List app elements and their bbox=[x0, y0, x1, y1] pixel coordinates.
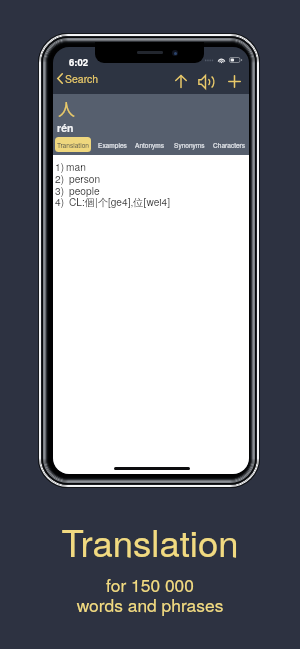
staticText: Antonyms bbox=[135, 140, 165, 149]
staticText: Translation bbox=[57, 140, 89, 149]
staticText: 3) bbox=[55, 183, 65, 198]
staticText: person bbox=[69, 171, 101, 186]
button[interactable]: Antonyms bbox=[133, 137, 167, 152]
button[interactable]: Translation bbox=[55, 137, 91, 152]
staticText: Search bbox=[65, 71, 99, 86]
staticText: people bbox=[69, 183, 100, 198]
staticText: 人 bbox=[58, 96, 75, 121]
staticText: 4) bbox=[55, 194, 65, 209]
button[interactable]: Pronounce bbox=[195, 70, 218, 93]
button[interactable]: Search bbox=[54, 68, 105, 89]
staticText: for 150 000 words and phrases bbox=[0, 572, 300, 617]
staticText: CL:個|个[ge4],位[wei4] bbox=[69, 194, 171, 209]
staticText: rén bbox=[57, 120, 74, 135]
button[interactable]: Examples bbox=[96, 137, 129, 152]
button[interactable]: Share bbox=[169, 70, 192, 93]
staticText: Examples bbox=[98, 140, 127, 149]
staticText: 2) bbox=[55, 171, 65, 186]
staticText: 6:02 bbox=[69, 55, 89, 69]
staticText: Translation bbox=[0, 515, 300, 567]
staticText: Synonyms bbox=[174, 140, 205, 149]
button[interactable]: Characters bbox=[211, 137, 248, 152]
staticText: Characters bbox=[213, 140, 246, 149]
button[interactable]: Add bbox=[223, 70, 246, 93]
button[interactable]: Synonyms bbox=[172, 137, 207, 152]
staticText: man bbox=[66, 159, 86, 174]
staticText: 1) bbox=[55, 159, 65, 174]
